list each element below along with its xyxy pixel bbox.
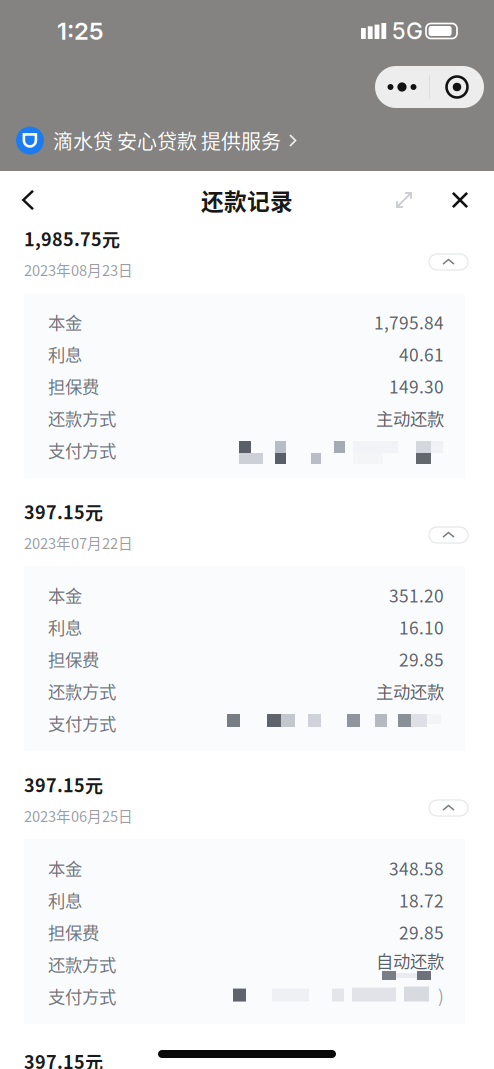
staticText: 支付方式: [48, 983, 116, 1009]
staticText: 还款方式: [48, 405, 116, 431]
button[interactable]: Close: [438, 178, 482, 222]
staticText: 还款方式: [48, 951, 116, 977]
button[interactable]: 滴水贷 安心贷款 提供服务: [0, 126, 297, 155]
staticText: 本金: [48, 309, 82, 335]
staticText: 本金: [48, 582, 82, 608]
button[interactable]: Collapse: [429, 782, 468, 816]
staticText: 397.15元: [24, 1048, 103, 1069]
staticText: 397.15元: [24, 498, 103, 525]
button[interactable]: Close mini program: [430, 66, 484, 108]
staticText: 还款记录: [201, 184, 293, 216]
button[interactable]: Collapse: [429, 236, 468, 270]
staticText: 支付方式: [48, 710, 116, 736]
staticText: 2023年06月25日: [24, 805, 133, 826]
staticText: 自动还款: [376, 948, 444, 973]
staticText: 16.10: [399, 614, 444, 640]
staticText: 主动还款: [376, 405, 444, 431]
staticText: 本金: [48, 855, 82, 881]
staticText: 1:25: [57, 16, 104, 45]
staticText: 主动还款: [376, 678, 444, 704]
staticText: 149.30: [389, 373, 444, 399]
staticText: 2023年08月23日: [24, 259, 133, 280]
button[interactable]: Back: [6, 178, 50, 222]
staticText: 利息: [48, 887, 82, 913]
staticText: 担保费: [48, 646, 99, 672]
button[interactable]: Collapse: [429, 509, 468, 543]
staticText: 1,985.75元: [24, 225, 120, 252]
staticText: 348.58: [389, 855, 444, 881]
staticText: 利息: [48, 341, 82, 367]
staticText: 担保费: [48, 373, 99, 399]
staticText: 5G: [392, 17, 423, 45]
button[interactable]: More: [375, 66, 429, 108]
staticText: 40.61: [399, 341, 444, 367]
staticText: 还款方式: [48, 678, 116, 704]
staticText: 18.72: [399, 887, 444, 913]
staticText: 29.85: [399, 646, 444, 672]
staticText: 滴水贷 安心贷款 提供服务: [53, 126, 281, 155]
staticText: 支付方式: [48, 437, 116, 463]
button[interactable]: Expand: [382, 178, 426, 222]
staticText: 利息: [48, 614, 82, 640]
staticText: 351.20: [389, 582, 444, 608]
staticText: 29.85: [399, 919, 444, 945]
staticText: 2023年07月22日: [24, 532, 133, 553]
staticText: 1,795.84: [374, 309, 444, 335]
staticText: 397.15元: [24, 771, 103, 798]
staticText: 担保费: [48, 919, 99, 945]
staticText: ): [438, 982, 444, 1008]
